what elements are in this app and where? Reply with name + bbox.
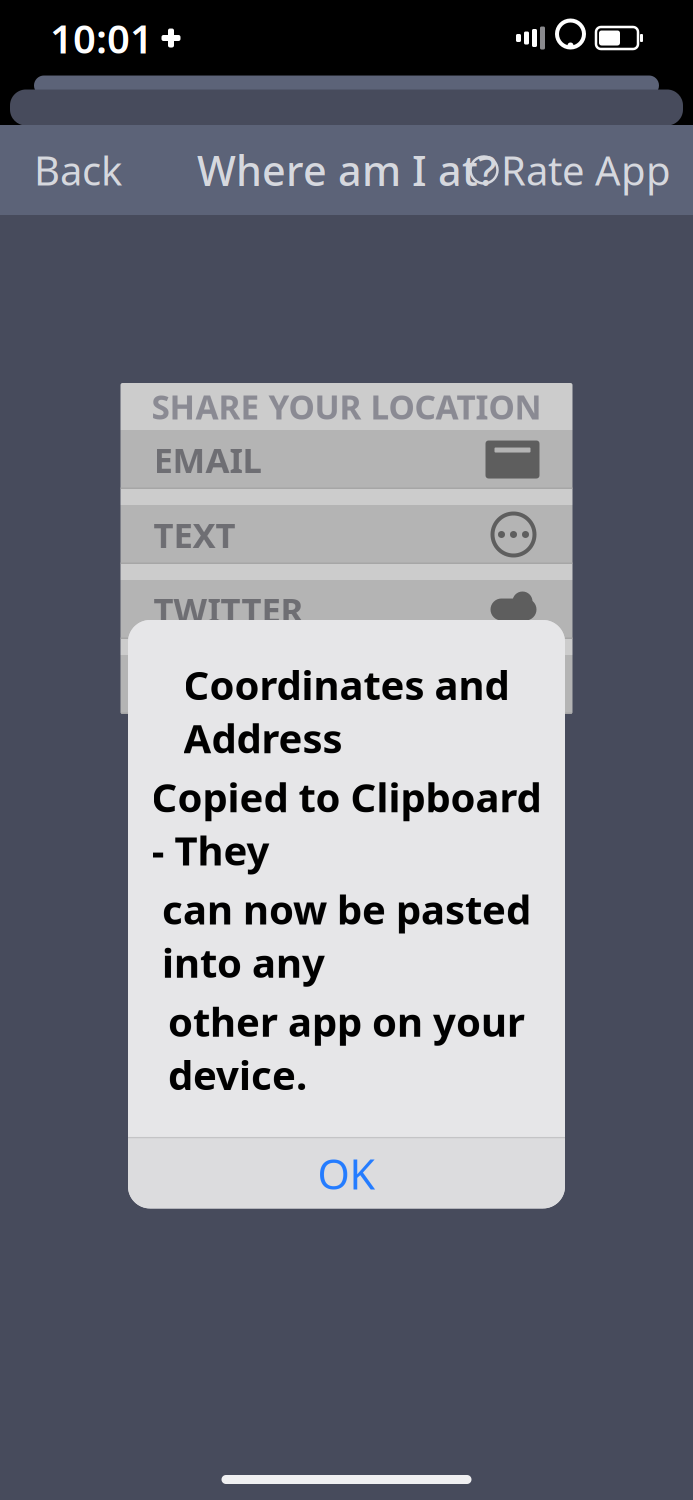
staticText: MORE [153, 661, 255, 707]
button[interactable]: TEXT [120, 505, 572, 564]
button[interactable]: EMAIL [120, 430, 572, 489]
staticText: can now be pasted into any [162, 882, 531, 989]
staticText: other app on your device. [168, 995, 525, 1101]
staticText: TEXT [153, 511, 235, 557]
staticText: 10:01 [50, 11, 153, 64]
staticText: Back [34, 143, 122, 196]
staticText: SHARE YOUR LOCATION [151, 384, 541, 429]
button[interactable]: MORE [120, 655, 572, 714]
button[interactable]: TWITTER [120, 580, 572, 639]
staticText: OK [317, 1146, 375, 1201]
staticText: Rate App [501, 143, 671, 196]
button[interactable]: Back [0, 125, 156, 215]
staticText: TWITTER [153, 586, 303, 632]
button[interactable]: OK [128, 1138, 565, 1208]
staticText: Copied to Clipboard - They [151, 770, 541, 876]
staticText: EMAIL [153, 436, 261, 482]
staticText: Where am I at? [197, 143, 496, 197]
staticText: Coordinates and Address [183, 658, 509, 764]
button[interactable]: Rate App [447, 125, 693, 215]
